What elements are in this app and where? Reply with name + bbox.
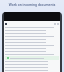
button[interactable]: [5, 56, 59, 60]
staticText: Work on incoming documents: [2, 3, 62, 7]
